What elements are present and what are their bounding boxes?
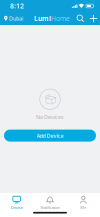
staticText: Lumi [34,14,51,23]
staticText: 8:12 [10,2,24,10]
staticText: No Devices [36,113,64,121]
button[interactable]: Me [67,195,100,211]
button[interactable]: Search [74,12,87,24]
staticText: Device [11,205,23,210]
button[interactable]: Add device [87,12,100,24]
staticText: Add Device [36,132,63,139]
staticText: Dubai [9,15,23,22]
button[interactable]: Add Device [4,130,96,142]
button[interactable]: Notification [33,195,67,211]
staticText: Home [51,14,70,23]
button[interactable]: Dubai [0,12,27,24]
staticText: Notification [40,205,59,210]
button[interactable]: Device [0,195,33,211]
staticText: Me [80,205,86,210]
